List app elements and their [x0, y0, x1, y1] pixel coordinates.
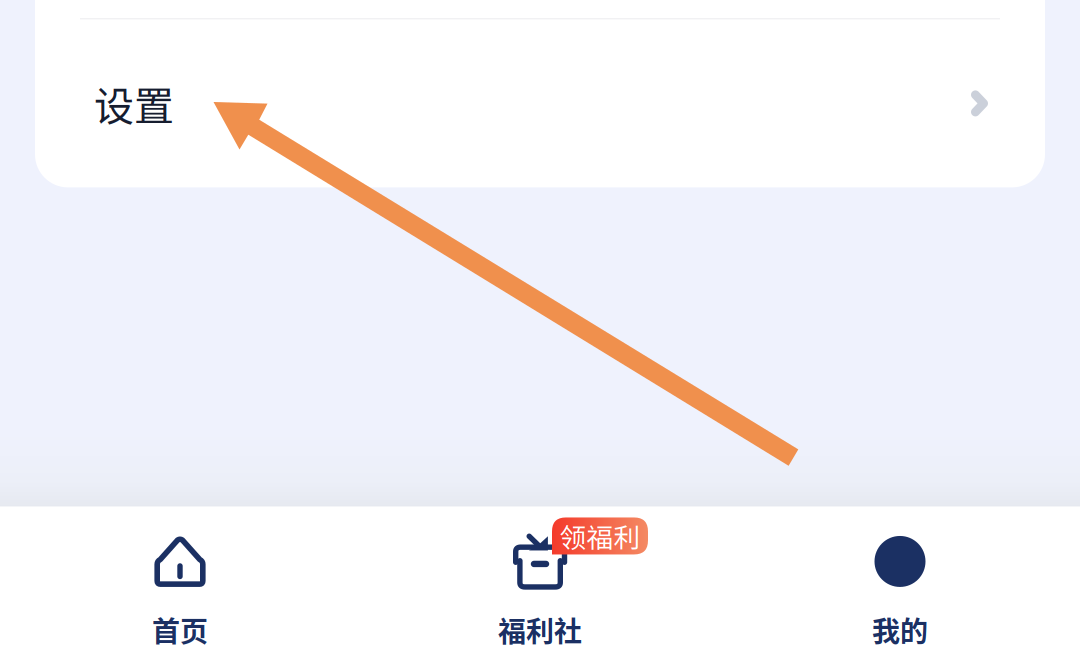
- staticText: 设置: [94, 74, 174, 132]
- staticText: 我的: [872, 609, 928, 650]
- button[interactable]: 首页: [0, 506, 360, 654]
- staticText: 首页: [152, 609, 208, 650]
- staticText: 福利社: [498, 609, 582, 650]
- button[interactable]: 我的: [720, 506, 1080, 654]
- button[interactable]: 设置: [35, 19, 1045, 187]
- button[interactable]: 福利社: [360, 506, 720, 654]
- staticText: 领福利: [559, 517, 640, 555]
